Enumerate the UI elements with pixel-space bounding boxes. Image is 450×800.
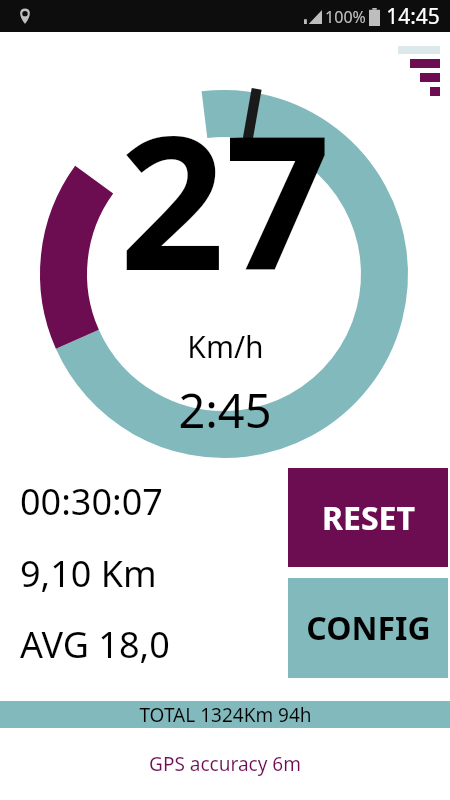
button[interactable]: GPS signal strength: [394, 46, 440, 96]
button[interactable]: TOTAL 1324Km 94h: [0, 701, 450, 728]
staticText: 9,10 Km: [20, 549, 157, 598]
staticText: GPS accuracy 6m: [149, 751, 301, 777]
staticText: 2:45: [178, 378, 272, 442]
staticText: RESET: [322, 496, 415, 540]
staticText: AVG 18,0: [20, 620, 170, 669]
staticText: 00:30:07: [20, 477, 163, 526]
staticText: CONFIG: [306, 606, 431, 650]
button[interactable]: CONFIG: [288, 578, 448, 678]
button[interactable]: RESET: [288, 468, 448, 567]
staticText: 14:45: [386, 2, 440, 31]
staticText: 27: [119, 72, 331, 324]
staticText: TOTAL 1324Km 94h: [139, 702, 312, 728]
staticText: 100%: [325, 6, 366, 28]
staticText: Km/h: [187, 326, 264, 366]
